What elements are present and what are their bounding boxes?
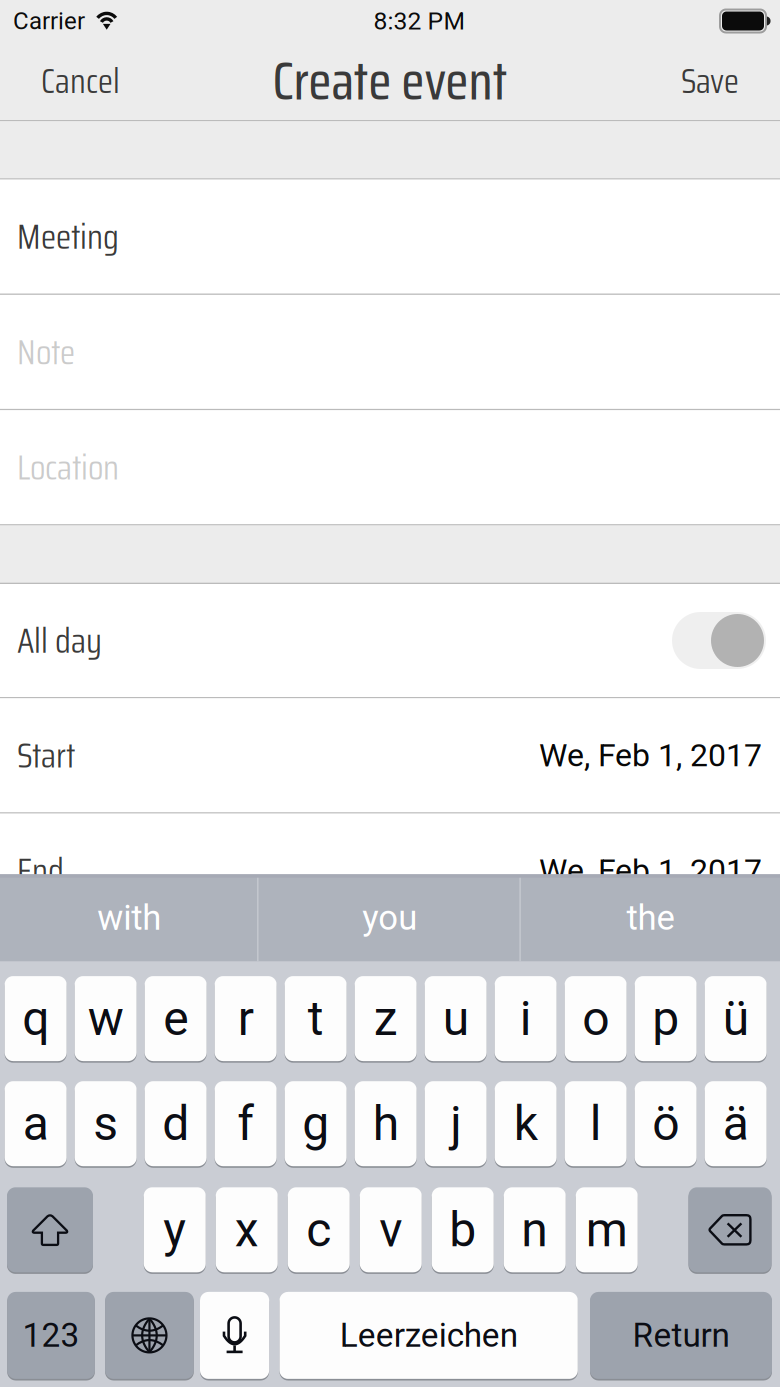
button[interactable]: Cancel <box>0 42 144 120</box>
staticText: 8:32 PM <box>373 6 465 35</box>
button[interactable]: l <box>565 1080 627 1167</box>
staticText: e <box>163 990 188 1047</box>
button[interactable]: v <box>360 1186 422 1273</box>
button[interactable]: Leerzeichen <box>279 1291 578 1380</box>
staticText: ü <box>723 990 749 1047</box>
staticText: z <box>374 990 398 1047</box>
button[interactable]: a <box>5 1080 67 1167</box>
button[interactable]: End <box>0 814 780 928</box>
staticText: End <box>17 843 64 898</box>
button[interactable]: i <box>495 975 557 1062</box>
staticText: t <box>308 990 324 1047</box>
staticText: l <box>590 1096 602 1152</box>
staticText: We, Feb 1, 2017 <box>539 852 762 889</box>
button[interactable]: the <box>521 874 780 961</box>
staticText: s <box>93 1096 118 1152</box>
staticText: Create event <box>272 39 507 123</box>
button[interactable]: r <box>215 975 277 1062</box>
button[interactable]: Note <box>0 295 780 409</box>
button[interactable]: ö <box>635 1080 697 1167</box>
staticText: j <box>450 1096 461 1152</box>
staticText: i <box>520 990 532 1047</box>
staticText: 123 <box>22 1316 79 1355</box>
button[interactable]: b <box>432 1186 494 1273</box>
button[interactable]: m <box>576 1186 638 1273</box>
button[interactable]: Start <box>0 698 780 812</box>
staticText: m <box>586 1202 628 1258</box>
button[interactable]: Next keyboard <box>105 1291 194 1380</box>
button[interactable]: Save <box>659 42 780 120</box>
staticText: u <box>443 990 469 1047</box>
staticText: Start <box>17 728 75 783</box>
staticText: b <box>449 1202 476 1258</box>
button[interactable]: t <box>285 975 347 1062</box>
button[interactable]: Shift <box>7 1186 93 1273</box>
button[interactable]: Delete <box>688 1186 771 1273</box>
button[interactable]: f <box>215 1080 277 1167</box>
staticText: Leerzeichen <box>340 1316 518 1355</box>
button[interactable]: p <box>635 975 697 1062</box>
button[interactable]: ü <box>705 975 767 1062</box>
button[interactable]: s <box>75 1080 137 1167</box>
staticText: Return <box>632 1316 729 1355</box>
staticText: a <box>23 1096 49 1152</box>
button[interactable]: o <box>565 975 627 1062</box>
button[interactable]: you <box>258 874 521 961</box>
staticText: ä <box>723 1096 749 1152</box>
staticText: g <box>302 1096 329 1152</box>
staticText: Carrier <box>13 7 85 35</box>
staticText: Meeting <box>17 209 119 264</box>
staticText: n <box>521 1202 548 1258</box>
staticText: o <box>582 990 609 1047</box>
button[interactable]: ä <box>705 1080 767 1167</box>
button[interactable]: e <box>145 975 207 1062</box>
staticText: k <box>514 1096 538 1152</box>
staticText: x <box>235 1202 259 1258</box>
button[interactable]: Meeting <box>0 180 780 294</box>
button[interactable]: with <box>0 874 258 961</box>
button[interactable]: h <box>355 1080 417 1167</box>
staticText: r <box>238 990 254 1047</box>
staticText: f <box>237 1096 254 1152</box>
staticText: Note <box>17 324 75 380</box>
staticText: Save <box>681 54 739 108</box>
staticText: h <box>373 1096 399 1152</box>
button[interactable]: d <box>145 1080 207 1167</box>
staticText: ö <box>652 1096 679 1152</box>
button[interactable]: Return <box>590 1291 772 1380</box>
staticText: Location <box>17 439 119 495</box>
staticText: c <box>306 1202 331 1258</box>
button[interactable]: z <box>355 975 417 1062</box>
staticText: We, Feb 1, 2017 <box>539 736 762 774</box>
button[interactable]: All day <box>0 584 780 697</box>
button[interactable]: y <box>144 1186 206 1273</box>
staticText: w <box>88 990 124 1047</box>
staticText: with <box>97 897 161 938</box>
button[interactable]: 123 <box>7 1291 95 1380</box>
button[interactable]: c <box>288 1186 350 1273</box>
button[interactable]: q <box>5 975 67 1062</box>
button[interactable]: u <box>425 975 487 1062</box>
button[interactable]: n <box>504 1186 566 1273</box>
staticText: y <box>163 1202 186 1258</box>
button[interactable]: g <box>285 1080 347 1167</box>
staticText: All day <box>17 613 102 668</box>
button[interactable]: w <box>75 975 137 1062</box>
button[interactable]: Location <box>0 410 780 524</box>
button[interactable]: Dictate <box>200 1291 269 1380</box>
staticText: the <box>626 897 674 938</box>
staticText: v <box>379 1202 402 1258</box>
button[interactable]: k <box>495 1080 557 1167</box>
staticText: q <box>22 990 49 1047</box>
staticText: d <box>162 1096 189 1152</box>
staticText: you <box>362 897 417 938</box>
staticText: p <box>652 990 679 1047</box>
button[interactable]: x <box>216 1186 278 1273</box>
button[interactable]: j <box>425 1080 487 1167</box>
staticText: Cancel <box>41 54 120 108</box>
